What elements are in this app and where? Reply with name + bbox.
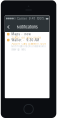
staticText: Notifications [17, 25, 38, 29]
staticText: Maps · now [11, 32, 30, 36]
button[interactable]: Back [6, 24, 11, 30]
staticText: Notifications you receive will show up h… [11, 45, 46, 51]
button[interactable]: Maps · now [5, 32, 49, 38]
staticText: Apple Card payment due [11, 42, 46, 45]
staticText: ●●●●○ [6, 17, 16, 20]
staticText: 9:41 [29, 17, 35, 20]
staticText: Traffic on your route [11, 36, 41, 39]
staticText: 100% [37, 17, 46, 20]
button[interactable]: Wallet · 9:30 AM [5, 38, 49, 44]
staticText: Wallet · 9:30 AM [11, 38, 39, 42]
staticText: Carrier [16, 17, 27, 20]
